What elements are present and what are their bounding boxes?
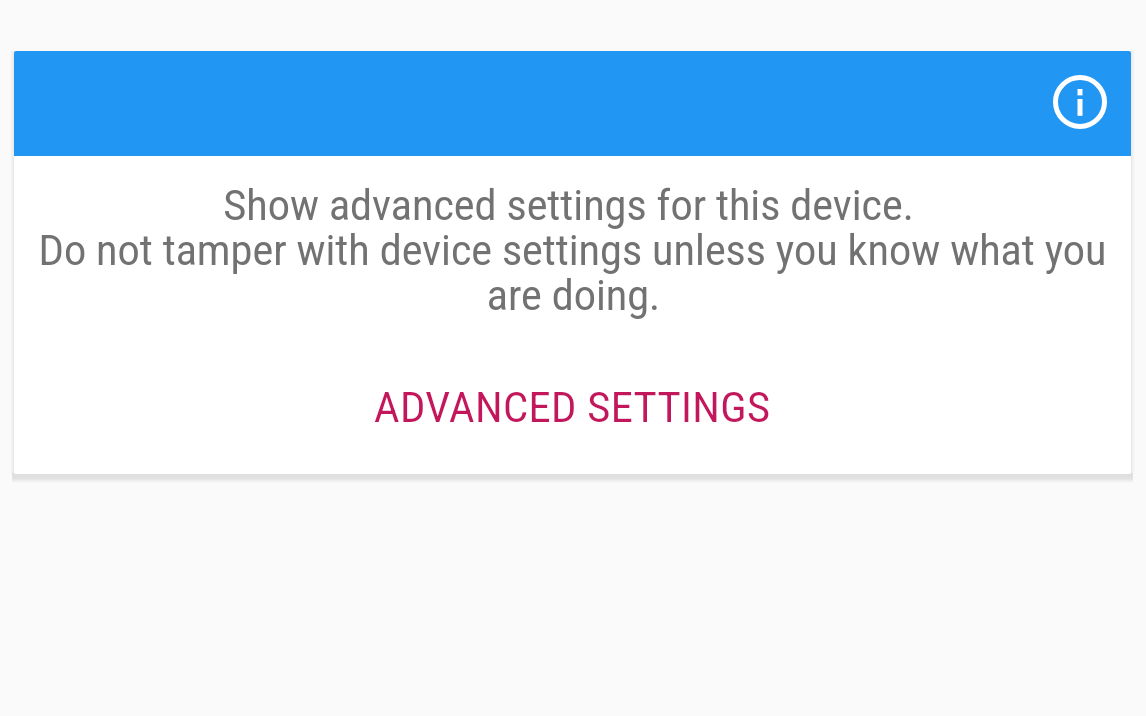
staticText: are doing.: [15, 271, 1131, 320]
button[interactable]: ADVANCED SETTINGS: [344, 353, 801, 462]
staticText: Do not tamper with device settings unles…: [14, 226, 1131, 275]
button[interactable]: Info: [1042, 64, 1118, 140]
staticText: ADVANCED SETTINGS: [374, 383, 771, 432]
staticText: Show advanced settings for this device.: [14, 181, 1127, 230]
